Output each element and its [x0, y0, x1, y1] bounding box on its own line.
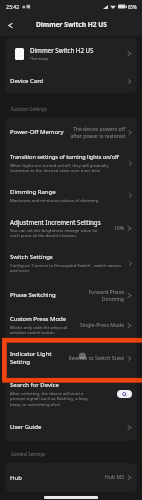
staticText: Hub M3 [105, 474, 124, 481]
button[interactable]: Indicator Light Setting [5, 341, 137, 375]
staticText: Dimmer Switch H2 US [30, 46, 94, 54]
button[interactable]: Custom Press Mode [5, 310, 137, 341]
button[interactable]: Dimmer Switch H2 US [5, 38, 137, 69]
button[interactable]: User Guide [5, 413, 137, 441]
staticText: Forward Phase Dimming [84, 289, 124, 302]
staticText: When lights are turned on/off, they will… [10, 162, 126, 174]
button[interactable]: Search for Device [5, 375, 137, 413]
button[interactable]: Adjustment Increment Settings [5, 210, 137, 247]
staticText: User Guide [10, 423, 42, 431]
staticText: Switch Settings [10, 253, 53, 261]
button[interactable]: Hub [5, 463, 137, 492]
staticText: Single-Press Mode [79, 322, 124, 329]
button[interactable]: Transition settings of turning lights on… [5, 147, 137, 180]
staticText: Transition settings of turning lights on… [10, 153, 119, 161]
staticText: Works only with the physical wireless sw… [10, 324, 70, 336]
staticText: Пятница [30, 55, 48, 61]
staticText: Custom Press Mode [10, 315, 67, 323]
staticText: Indicator Light Setting [10, 350, 54, 366]
staticText: Configure 'Convert to Decoupled Switch',… [10, 262, 126, 274]
staticText: After selecting, the device will emit a … [10, 390, 98, 408]
button[interactable]: Dimming Range [5, 180, 137, 210]
button[interactable]: Phase Switching [5, 280, 137, 310]
staticText: 23:42 [6, 3, 20, 10]
button[interactable]: Back [3, 18, 17, 32]
staticText: You can set the brightness change value … [10, 227, 107, 239]
staticText: Phase Switching [10, 291, 56, 299]
staticText: Search for Device [10, 381, 59, 389]
staticText: Power-Off Memory [10, 128, 64, 136]
staticText: Dimmer Switch H2 US [36, 20, 107, 29]
staticText: General Settings [11, 451, 46, 457]
staticText: Device Card [10, 77, 44, 85]
button[interactable]: Device Card [5, 69, 137, 93]
button[interactable]: Switch Settings [5, 247, 137, 280]
staticText: Adjustment Increment Settings [10, 218, 101, 226]
staticText: Function Settings [11, 106, 47, 112]
button[interactable]: Search for device [117, 390, 132, 398]
button[interactable]: Power-Off Memory [5, 117, 137, 147]
staticText: 10% [113, 225, 124, 232]
staticText: Dimming Range [10, 188, 56, 196]
staticText: The device powers off after power is res… [68, 126, 125, 139]
staticText: 85% [128, 4, 137, 10]
staticText: Maximum and minimum values of dimming [10, 197, 99, 203]
staticText: Hub [10, 474, 22, 482]
staticText: Reverse to Switch State [68, 355, 124, 362]
